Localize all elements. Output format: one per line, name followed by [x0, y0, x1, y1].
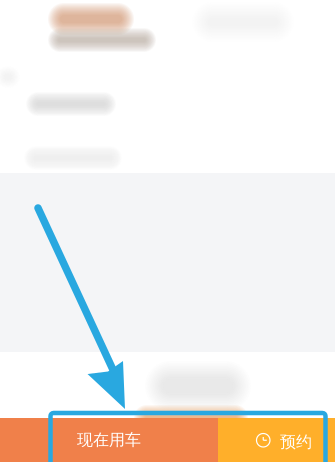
button[interactable]: 预约 — [218, 418, 335, 462]
staticText: 预约 — [280, 432, 312, 452]
staticText: 现在用车 — [77, 430, 141, 450]
button[interactable]: 现在用车 — [0, 418, 218, 462]
